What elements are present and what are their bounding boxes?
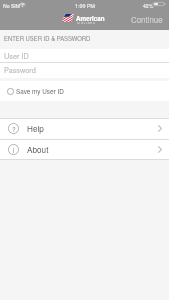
button[interactable]: User ID [0,49,169,62]
staticText: ? [12,124,16,133]
staticText: No SIM [3,2,20,9]
staticText: American [76,14,105,23]
staticText: About [27,144,49,156]
button[interactable]: i [0,139,169,160]
button[interactable]: ? [0,118,169,139]
staticText: Password [4,65,36,75]
button[interactable]: Save my User ID [0,81,169,101]
staticText: ENTER USER ID & PASSWORD [4,34,91,42]
staticText: 42% [143,2,154,9]
button[interactable]: Password [0,62,169,77]
other: American Airlines [62,14,74,22]
staticText: Save my User ID [16,87,64,96]
staticText: i [13,145,15,154]
staticText: 1:00 PM [75,2,96,10]
staticText: AIRLINES [77,21,96,25]
staticText: Continue [131,14,163,25]
staticText: User ID [4,51,29,61]
button[interactable]: Continue [128,12,166,27]
staticText: Help [27,123,44,135]
